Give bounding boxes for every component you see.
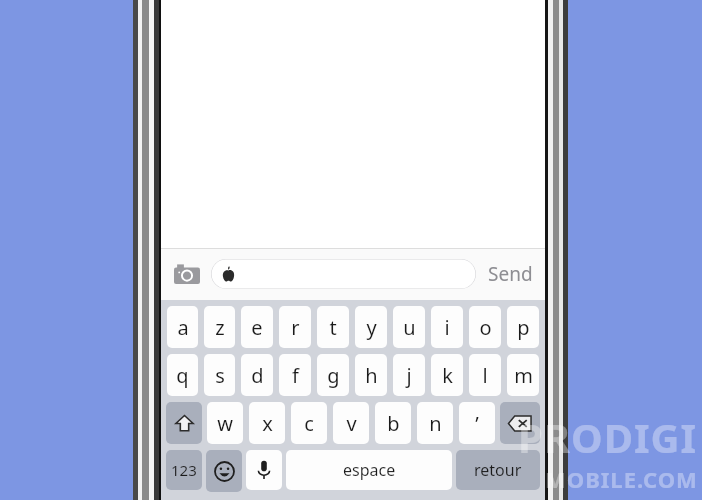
button[interactable]: retour (456, 450, 540, 490)
button[interactable]: u (393, 306, 425, 348)
staticText: w (217, 410, 233, 437)
button[interactable]: espace (286, 450, 452, 490)
button[interactable]: t (317, 306, 349, 348)
button[interactable]: Shift (166, 402, 202, 444)
button[interactable]: p (507, 306, 539, 348)
button[interactable]: Emoji (206, 450, 242, 492)
staticText: h (365, 362, 378, 389)
button[interactable]: Backspace (500, 402, 540, 444)
button[interactable]: d (241, 354, 273, 396)
button[interactable]: r (279, 306, 311, 348)
button[interactable]: l (469, 354, 501, 396)
button[interactable]: k (431, 354, 463, 396)
staticText: a (177, 314, 189, 341)
staticText: n (429, 410, 442, 437)
button[interactable]: c (291, 402, 327, 444)
staticText: g (327, 362, 340, 389)
button[interactable]: q (167, 354, 198, 396)
staticText: z (215, 314, 225, 341)
staticText: i (444, 314, 450, 341)
button[interactable] (211, 259, 476, 289)
button[interactable]: ’ (459, 402, 495, 444)
staticText: ’ (475, 410, 479, 437)
staticText: Send (488, 261, 533, 287)
button[interactable]: v (333, 402, 369, 444)
button[interactable] (246, 450, 282, 490)
button[interactable]: f (279, 354, 311, 396)
staticText: m (514, 362, 533, 389)
button[interactable]: h (355, 354, 387, 396)
staticText: MOBILE.COM (545, 464, 698, 494)
button[interactable]: Send (488, 261, 533, 287)
button[interactable]: m (507, 354, 539, 396)
staticText: r (291, 314, 300, 341)
staticText: 123 (171, 460, 197, 480)
button[interactable]: z (204, 306, 235, 348)
staticText: PRODIGI (518, 410, 698, 464)
button[interactable]: n (417, 402, 453, 444)
staticText: f (292, 362, 299, 389)
staticText: s (215, 362, 225, 389)
staticText: e (251, 314, 263, 341)
staticText: d (251, 362, 264, 389)
staticText: o (479, 314, 492, 341)
button[interactable]: e (241, 306, 273, 348)
staticText: retour (474, 459, 522, 481)
button[interactable]: s (204, 354, 235, 396)
staticText: x (262, 410, 273, 437)
button[interactable]: Camera (171, 258, 203, 290)
staticText: l (482, 362, 488, 389)
staticText: p (517, 314, 530, 341)
staticText: k (442, 362, 453, 389)
button[interactable]: g (317, 354, 349, 396)
button[interactable]: b (375, 402, 411, 444)
button[interactable]: y (355, 306, 387, 348)
button[interactable]: o (469, 306, 501, 348)
button[interactable]: a (167, 306, 198, 348)
staticText: b (387, 410, 400, 437)
staticText: q (176, 362, 189, 389)
button[interactable]: x (249, 402, 285, 444)
button[interactable]: 123 (166, 450, 202, 490)
staticText: t (329, 314, 337, 341)
staticText: u (403, 314, 416, 341)
staticText: j (406, 362, 412, 389)
staticText: y (366, 314, 377, 341)
staticText: v (346, 410, 357, 437)
staticText: c (304, 410, 314, 437)
button[interactable]: w (207, 402, 243, 444)
staticText: espace (343, 459, 396, 481)
button[interactable]: i (431, 306, 463, 348)
button[interactable]: j (393, 354, 425, 396)
